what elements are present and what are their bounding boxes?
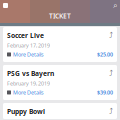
- staticText: Soccer Live: [7, 31, 44, 40]
- button[interactable]: Puppy Bowl: [3, 103, 117, 119]
- staticText: ⌕: [113, 2, 117, 9]
- staticText: February 17, 2019: [7, 42, 50, 49]
- staticText: $25.00: [97, 51, 113, 58]
- button[interactable]: Menu: [0, 1, 8, 8]
- button[interactable]: Soccer Live: [3, 27, 117, 62]
- staticText: $39.00: [97, 89, 113, 96]
- staticText: ⤴: [109, 69, 113, 77]
- staticText: More Details: [13, 89, 44, 96]
- button[interactable]: Search: [113, 0, 120, 9]
- staticText: TICKET: [49, 12, 71, 20]
- staticText: February 19, 2019: [7, 80, 50, 87]
- staticText: ⤴: [109, 107, 113, 115]
- button[interactable]: Share: [109, 69, 113, 77]
- staticText: ⤴: [109, 31, 113, 39]
- staticText: PSG vs Bayern: [7, 69, 54, 78]
- staticText: Puppy Bowl: [7, 107, 45, 116]
- button[interactable]: Share: [109, 31, 113, 39]
- button[interactable]: Share: [109, 107, 113, 115]
- staticText: More Details: [13, 51, 44, 58]
- button[interactable]: PSG vs Bayern: [3, 65, 117, 100]
